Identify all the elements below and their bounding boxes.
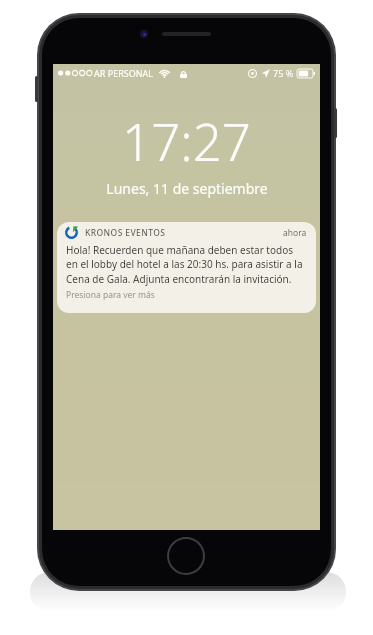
staticText: 17:27 bbox=[122, 106, 251, 175]
button[interactable]: KRONOS EVENTOS bbox=[57, 222, 316, 313]
staticText: Presiona para ver más bbox=[66, 289, 155, 301]
staticText: Lunes, 11 de septiembre bbox=[106, 179, 268, 198]
staticText: KRONOS EVENTOS bbox=[85, 227, 166, 239]
staticText: Hola! Recuerden que mañana deben estar t… bbox=[66, 243, 306, 286]
button[interactable]: Home bbox=[167, 537, 205, 575]
staticText: ahora bbox=[283, 227, 307, 239]
staticText: AR PERSONAL bbox=[94, 67, 154, 79]
staticText: 75 % bbox=[273, 67, 294, 79]
